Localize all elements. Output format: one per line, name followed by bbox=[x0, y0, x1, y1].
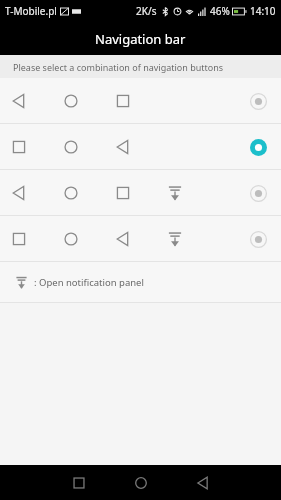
button[interactable]: Select combination bbox=[0, 78, 281, 123]
staticText: : Open notification panel bbox=[34, 276, 144, 289]
staticText: 46% bbox=[210, 4, 230, 18]
button[interactable]: Select combination bbox=[241, 222, 275, 256]
button[interactable]: Select combination bbox=[241, 84, 275, 118]
button[interactable]: Select combination bbox=[0, 124, 281, 169]
staticText: T-Mobile.pl bbox=[5, 4, 57, 18]
staticText: 14:10 bbox=[250, 4, 276, 18]
button[interactable]: Select combination bbox=[0, 216, 281, 261]
staticText: 2K/s bbox=[136, 4, 157, 18]
button[interactable]: Select combination bbox=[241, 130, 275, 164]
staticText: Navigation bar bbox=[95, 30, 186, 48]
staticText: Please select a combination of navigatio… bbox=[13, 61, 224, 73]
button[interactable]: Back bbox=[172, 465, 234, 500]
button[interactable]: Home bbox=[110, 465, 172, 500]
button[interactable]: Recents bbox=[48, 465, 110, 500]
button[interactable]: Select combination bbox=[241, 176, 275, 210]
button[interactable]: Select combination bbox=[0, 170, 281, 215]
